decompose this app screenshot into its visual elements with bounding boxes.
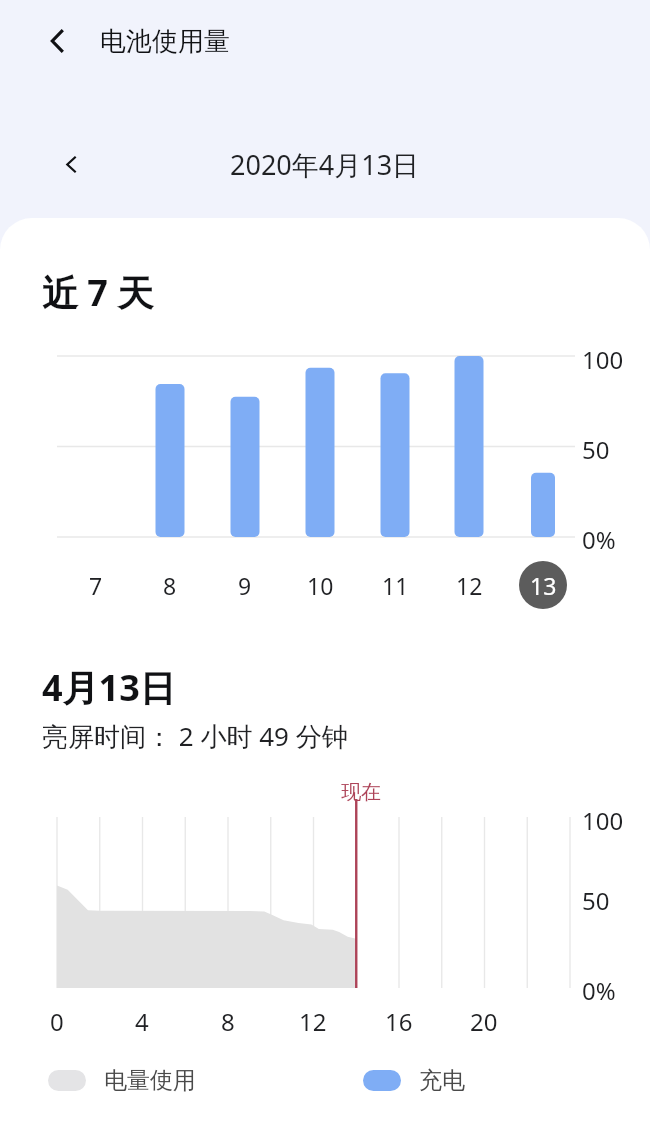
staticText: 11 — [382, 570, 409, 601]
staticText: 50 — [582, 433, 610, 466]
staticText: 8 — [221, 1005, 235, 1038]
button[interactable]: 12 — [445, 561, 493, 609]
staticText: 9 — [238, 570, 252, 601]
button[interactable]: Back — [32, 15, 84, 67]
staticText: 100 — [582, 343, 624, 376]
staticText: 2020年4月13日 — [230, 146, 420, 183]
staticText: 现在 — [341, 780, 381, 805]
staticText: 13 — [530, 570, 557, 601]
staticText: 电池使用量 — [100, 25, 230, 58]
staticText: 12 — [456, 570, 483, 601]
staticText: 充电 — [419, 1066, 465, 1095]
staticText: 亮屏时间： 2 小时 49 分钟 — [42, 718, 348, 754]
staticText: 100 — [582, 804, 624, 837]
staticText: 电量使用 — [104, 1066, 196, 1095]
staticText: 16 — [385, 1005, 413, 1038]
staticText: 0% — [582, 974, 616, 1007]
button[interactable]: 13 — [519, 561, 567, 609]
button[interactable]: Previous day — [47, 140, 95, 188]
staticText: 0 — [50, 1005, 64, 1038]
button[interactable]: 8 — [146, 561, 194, 609]
staticText: 20 — [470, 1005, 498, 1038]
button[interactable]: 7 — [72, 561, 120, 609]
staticText: 8 — [163, 570, 177, 601]
button[interactable]: 10 — [296, 561, 344, 609]
staticText: 12 — [299, 1005, 327, 1038]
button[interactable]: 9 — [221, 561, 269, 609]
staticText: 50 — [582, 884, 610, 917]
staticText: 10 — [307, 570, 334, 601]
staticText: 7 — [89, 570, 103, 601]
staticText: 0% — [582, 523, 616, 556]
button[interactable]: 11 — [371, 561, 419, 609]
button[interactable]: 充电 — [363, 1066, 465, 1095]
staticText: 4月13日 — [42, 663, 176, 712]
staticText: 近 7 天 — [42, 268, 154, 317]
button[interactable]: 电量使用 — [48, 1066, 196, 1095]
staticText: 4 — [135, 1005, 149, 1038]
